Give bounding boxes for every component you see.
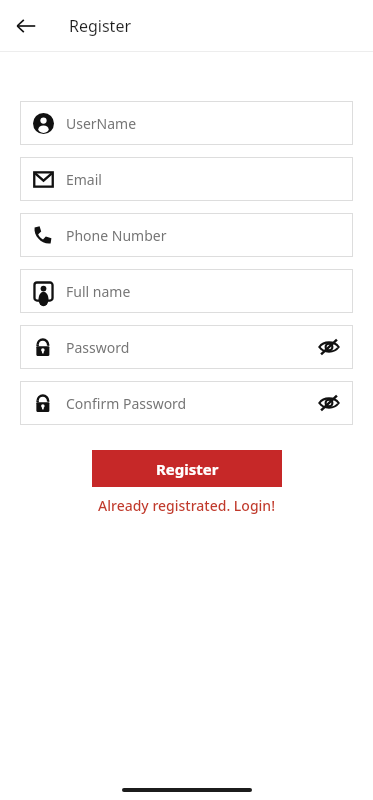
button[interactable]: Phone Number (20, 213, 353, 257)
staticText: Full name (66, 282, 131, 301)
button[interactable]: Full name (20, 269, 353, 313)
button[interactable]: UserName (20, 101, 353, 145)
staticText: Register (69, 15, 132, 37)
button[interactable]: Already registrated. Login! (0, 493, 373, 518)
staticText: Email (66, 170, 102, 189)
staticText: Phone Number (66, 226, 167, 245)
staticText: Confirm Password (66, 394, 187, 413)
button[interactable]: Register (92, 450, 282, 487)
button[interactable]: Email (20, 157, 353, 201)
staticText: UserName (66, 114, 137, 133)
button[interactable]: Confirm Password (20, 381, 353, 425)
button[interactable]: Toggle password visibility (315, 389, 343, 417)
staticText: Password (66, 338, 130, 357)
button[interactable]: Toggle password visibility (315, 333, 343, 361)
staticText: Register (156, 459, 219, 479)
button[interactable]: Password (20, 325, 353, 369)
button[interactable]: Back (8, 8, 44, 44)
staticText: Already registrated. Login! (98, 496, 275, 515)
